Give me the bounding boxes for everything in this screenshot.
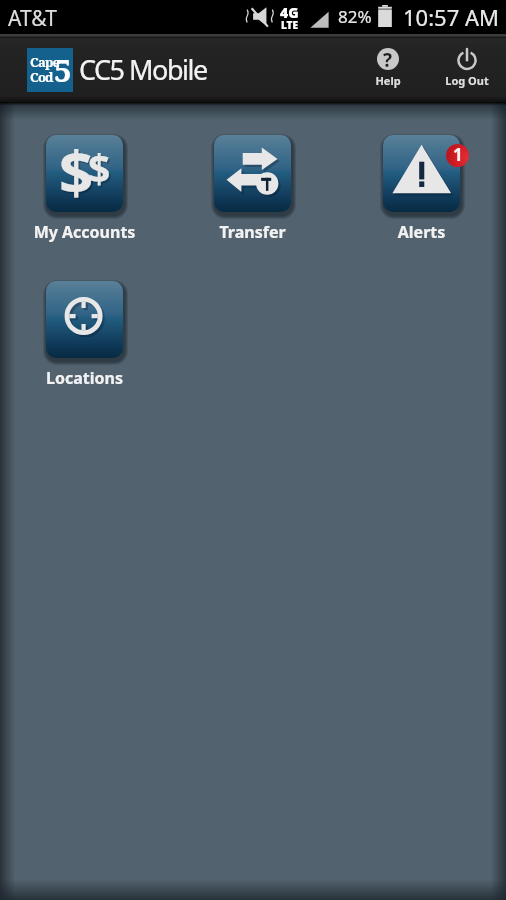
button[interactable]: Locations	[16, 276, 153, 393]
staticText: Help	[375, 73, 401, 88]
staticText: Alerts	[353, 221, 490, 243]
staticText: AT&T	[8, 4, 57, 33]
staticText: $	[88, 141, 111, 194]
staticText: My Accounts	[16, 221, 153, 243]
staticText: $	[59, 135, 94, 207]
staticText: 82%	[338, 5, 372, 28]
staticText: Cod	[30, 68, 53, 86]
staticText: Cape	[30, 53, 60, 71]
button[interactable]: 1	[353, 130, 490, 247]
staticText: $	[61, 135, 96, 209]
staticText: ?	[383, 47, 393, 69]
button[interactable]: Cape	[27, 48, 207, 92]
staticText: LTE	[281, 18, 299, 32]
staticText: Log Out	[445, 73, 489, 88]
button[interactable]: $	[16, 130, 153, 247]
button[interactable]: Log Out	[435, 48, 499, 88]
staticText: 4G	[280, 3, 299, 22]
staticText: $	[90, 143, 113, 196]
staticText: CC5 Mobile	[79, 51, 207, 88]
staticText: Locations	[16, 367, 153, 389]
staticText: 10:57 AM	[403, 2, 499, 32]
staticText: Transfer	[184, 221, 321, 243]
button[interactable]: Help	[356, 48, 420, 88]
button[interactable]: Transfer	[184, 130, 321, 247]
staticText: 5	[54, 49, 72, 91]
staticText: 1	[453, 144, 463, 166]
